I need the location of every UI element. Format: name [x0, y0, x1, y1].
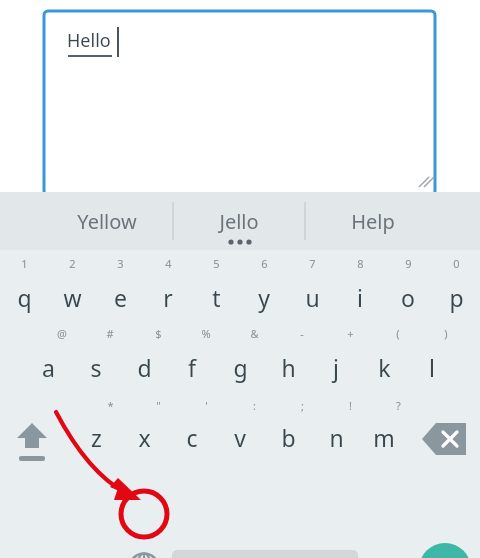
staticText: Jello	[219, 208, 259, 235]
staticText: h	[281, 352, 296, 383]
staticText: 7	[309, 256, 316, 271]
staticText: u	[305, 282, 320, 313]
button[interactable]: Jello	[173, 192, 305, 250]
staticText: 0	[453, 256, 460, 271]
button[interactable]: d	[120, 344, 168, 390]
button[interactable]: Backspace	[420, 417, 472, 461]
button[interactable]: t	[192, 274, 240, 320]
button[interactable]: k	[360, 344, 408, 390]
staticText: 4	[165, 256, 172, 271]
button[interactable]: Yellow	[40, 192, 173, 250]
staticText: Help	[351, 208, 395, 235]
button[interactable]: i	[336, 274, 384, 320]
staticText: i	[357, 282, 363, 313]
button[interactable]: Shift	[2, 412, 58, 466]
button[interactable]: Help	[305, 192, 440, 250]
button[interactable]: f	[168, 344, 216, 390]
staticText: b	[281, 422, 296, 453]
staticText: y	[258, 282, 270, 313]
button[interactable]: w	[48, 274, 96, 320]
button[interactable]: z	[72, 414, 120, 460]
staticText: &	[250, 326, 259, 341]
button[interactable]: s	[72, 344, 120, 390]
staticText: p	[449, 282, 464, 313]
staticText: !	[349, 398, 352, 413]
staticText: '	[205, 398, 208, 413]
staticText: a	[42, 352, 55, 383]
staticText: 8	[357, 256, 364, 271]
staticText: t	[212, 282, 221, 313]
staticText: -	[300, 326, 304, 341]
staticText: x	[138, 422, 151, 453]
staticText: r	[163, 282, 173, 313]
staticText: d	[137, 352, 152, 383]
staticText: 9	[405, 256, 412, 271]
staticText: *	[107, 398, 114, 413]
staticText: e	[114, 282, 127, 313]
button[interactable]: Switch language	[120, 546, 168, 558]
staticText: 3	[117, 256, 124, 271]
button[interactable]: e	[96, 274, 144, 320]
button[interactable]: Enter	[418, 542, 472, 558]
button[interactable]: j	[312, 344, 360, 390]
staticText: f	[188, 352, 196, 383]
button[interactable]: u	[288, 274, 336, 320]
staticText: ;	[301, 398, 304, 413]
staticText: Hello	[67, 28, 111, 53]
staticText: v	[234, 422, 246, 453]
button[interactable]: p	[432, 274, 480, 320]
button[interactable]: o	[384, 274, 432, 320]
staticText: :	[253, 398, 256, 413]
staticText: g	[233, 352, 248, 383]
button[interactable]: m	[360, 414, 408, 460]
staticText: +	[347, 326, 354, 341]
button[interactable]: q	[0, 274, 48, 320]
staticText: s	[90, 352, 102, 383]
staticText: 6	[261, 256, 268, 271]
button[interactable]: n	[312, 414, 360, 460]
button[interactable]: c	[168, 414, 216, 460]
button[interactable]: x	[120, 414, 168, 460]
button[interactable]: b	[264, 414, 312, 460]
staticText: m	[373, 422, 395, 453]
button[interactable]: y	[240, 274, 288, 320]
staticText: Yellow	[77, 208, 137, 235]
button[interactable]: g	[216, 344, 264, 390]
staticText: (	[396, 326, 400, 341]
staticText: $	[155, 326, 162, 341]
staticText: k	[378, 352, 391, 383]
button[interactable]: h	[264, 344, 312, 390]
button[interactable]: a	[24, 344, 72, 390]
staticText: o	[401, 282, 415, 313]
staticText: j	[333, 352, 339, 383]
staticText: q	[17, 282, 32, 313]
staticText: @	[57, 326, 67, 341]
staticText: n	[329, 422, 344, 453]
staticText: "	[156, 398, 161, 413]
staticText: %	[201, 326, 211, 341]
button[interactable]: r	[144, 274, 192, 320]
staticText: #	[106, 326, 114, 341]
staticText: 5	[213, 256, 220, 271]
staticText: )	[444, 326, 448, 341]
staticText: l	[429, 352, 435, 383]
staticText: z	[91, 422, 102, 453]
staticText: ?	[396, 398, 401, 413]
staticText: c	[186, 422, 198, 453]
button[interactable]: l	[408, 344, 456, 390]
staticText: 1	[21, 256, 28, 271]
staticText: 2	[69, 256, 76, 271]
staticText: w	[63, 282, 82, 313]
button[interactable]: v	[216, 414, 264, 460]
